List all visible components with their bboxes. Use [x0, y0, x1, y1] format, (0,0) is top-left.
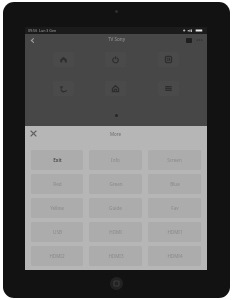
button[interactable]: HDMI2 [31, 246, 83, 266]
staticText: HDMI2 [49, 253, 65, 259]
staticText: Screen [167, 157, 182, 163]
staticText: Info [111, 157, 120, 163]
button[interactable]: Apps [158, 52, 179, 67]
staticText: Yellow [50, 205, 64, 211]
button[interactable]: Cast [184, 34, 194, 46]
button[interactable]: HDMI4 [148, 246, 201, 266]
button[interactable]: Home [53, 52, 74, 67]
staticText: HDMI3 [108, 253, 124, 259]
staticText: HDMI4 [167, 253, 183, 259]
button[interactable]: HDMI3 [89, 246, 142, 266]
staticText: Blue [170, 181, 180, 187]
button[interactable]: HDMI1 [148, 222, 201, 242]
staticText: TV Sony [108, 36, 125, 42]
staticText: More [110, 131, 122, 137]
button[interactable]: Exit [31, 150, 83, 170]
button[interactable]: Menu [158, 81, 179, 96]
staticText: HDMI [109, 229, 122, 235]
button[interactable]: Back [25, 34, 39, 46]
staticText: Guide [109, 205, 122, 211]
staticText: Exit [53, 157, 62, 163]
button[interactable]: Back [53, 81, 74, 96]
staticText: HDMI1 [167, 229, 183, 235]
staticText: 09:56 Lun 3 Gen [28, 28, 57, 33]
button[interactable]: Close [28, 128, 39, 139]
button[interactable]: Android home [105, 81, 126, 96]
staticText: USB [53, 229, 62, 235]
button[interactable]: More options [194, 34, 204, 46]
staticText: Green [109, 181, 123, 187]
staticText: Fav [171, 205, 179, 211]
staticText: Red [53, 181, 62, 187]
button[interactable]: Power [105, 52, 126, 67]
